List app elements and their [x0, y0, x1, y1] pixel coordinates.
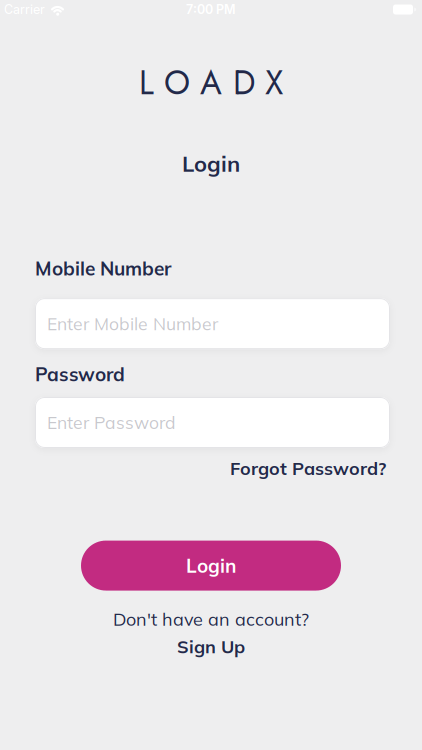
staticText: Mobile Number: [35, 256, 171, 280]
staticText: Forgot Password?: [230, 457, 386, 480]
staticText: Sign Up: [177, 635, 245, 658]
staticText: Enter Mobile Number: [47, 313, 218, 335]
staticText: Login: [182, 150, 240, 177]
staticText: Login: [186, 554, 236, 577]
staticText: Don't have an account?: [113, 608, 309, 630]
staticText: 7:00 PM: [186, 2, 236, 17]
button[interactable]: Login: [81, 541, 341, 591]
staticText: LOADX: [139, 59, 283, 107]
staticText: Password: [35, 362, 125, 386]
staticText: Carrier: [4, 2, 45, 17]
staticText: Enter Password: [47, 411, 176, 433]
button[interactable]: Forgot Password?: [230, 457, 386, 480]
button[interactable]: Sign Up: [177, 635, 245, 658]
